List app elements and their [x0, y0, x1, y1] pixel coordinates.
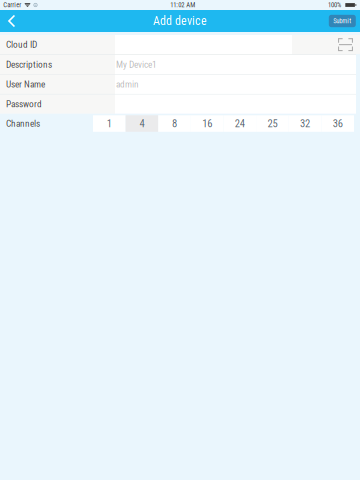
staticText: Descriptions	[6, 59, 52, 70]
staticText: 32	[300, 117, 310, 130]
staticText: 11:02 AM	[170, 1, 195, 9]
staticText: 24	[235, 117, 245, 130]
staticText: Submit	[333, 17, 351, 25]
button[interactable]: 25	[256, 115, 289, 132]
button[interactable]: Submit	[329, 15, 356, 27]
staticText: Cloud ID	[6, 39, 37, 50]
staticText: My Device1	[116, 59, 157, 70]
button[interactable]: 1	[93, 115, 126, 132]
staticText: Add device	[153, 14, 207, 28]
staticText: 8	[172, 117, 177, 130]
button[interactable]: 16	[191, 115, 223, 132]
staticText: 100%	[328, 1, 341, 9]
button[interactable]: Scan QR code	[292, 35, 360, 54]
staticText: 16	[202, 117, 212, 130]
staticText: Carrier	[3, 1, 21, 9]
button[interactable]: 4	[126, 115, 158, 132]
button[interactable]: 24	[223, 115, 256, 132]
button[interactable]: 36	[321, 115, 354, 132]
button[interactable]: Back	[0, 10, 22, 32]
staticText: 25	[267, 117, 277, 130]
staticText: admin	[116, 79, 139, 90]
staticText: User Name	[6, 79, 45, 90]
staticText: 36	[333, 117, 343, 130]
staticText: 4	[139, 117, 144, 130]
staticText: Channels	[6, 118, 40, 129]
button[interactable]: 8	[158, 115, 191, 132]
staticText: Password	[6, 99, 42, 110]
button[interactable]: 32	[289, 115, 321, 132]
staticText: 1	[107, 117, 112, 130]
